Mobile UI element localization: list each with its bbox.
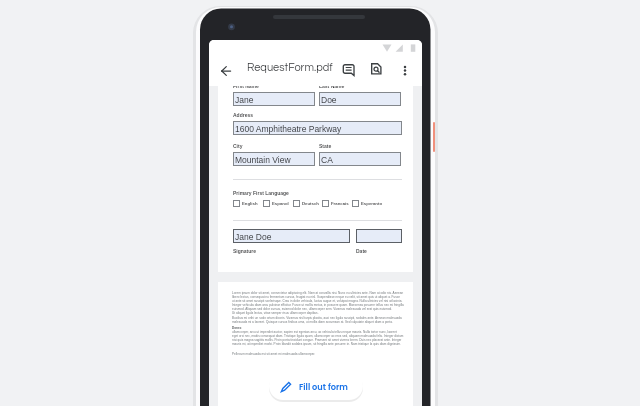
staticText: Lorem ipsum dolor sit amet, consectetur … xyxy=(232,291,407,294)
staticText: Bucibus mi orthi un sodo ortum dicoris. … xyxy=(232,316,407,319)
staticText: ullamcorper, arcu ut imperdiet auctor, s… xyxy=(232,330,407,333)
staticText: 1600 Amphitheatre Parkway xyxy=(235,124,342,133)
button[interactable]: Jane xyxy=(233,92,315,106)
staticText: eget orci nec, mattis consequat diam. Tr… xyxy=(232,334,407,337)
staticText: malesuada mi a laoreet. Quisque cursus f… xyxy=(232,320,407,323)
staticText: Pellecum malesuada est sit amet mi males… xyxy=(232,352,407,355)
staticText: Doe xyxy=(321,95,337,104)
staticText: Jane Doe xyxy=(235,232,272,241)
staticText: Signature xyxy=(233,248,257,254)
staticText: City xyxy=(233,143,243,149)
staticText: Address xyxy=(233,112,254,118)
staticText: Deutsch xyxy=(302,201,319,206)
staticText: Esperanto xyxy=(361,201,383,206)
button[interactable]: Doe xyxy=(319,92,401,106)
button[interactable]: Fill out form xyxy=(269,372,363,400)
button[interactable]: Mountain View xyxy=(233,152,315,166)
staticText: RequestForm.pdf xyxy=(247,62,333,73)
button[interactable]: Search document xyxy=(367,59,387,79)
button[interactable]: Back xyxy=(211,58,241,83)
button[interactable]: CA xyxy=(319,152,401,166)
staticText: mauris mi, at imperdiet morbi. Proin bla… xyxy=(232,342,407,345)
staticText: Espanol xyxy=(272,201,289,206)
button[interactable]: Espanol xyxy=(263,200,289,207)
staticText: Date xyxy=(356,248,367,254)
button[interactable]: English xyxy=(233,200,258,207)
button[interactable]: More options xyxy=(395,62,415,82)
staticText: Jane xyxy=(235,95,254,104)
staticText: First Name xyxy=(233,83,259,89)
staticText: Ut aliquet ligula lectus, vitae semper r… xyxy=(232,311,407,314)
button[interactable]: Francais xyxy=(322,200,349,207)
staticText: Francais xyxy=(331,201,349,206)
staticText: libero lectus, consequat eu fermentum cu… xyxy=(232,295,407,298)
staticText: Fill out form xyxy=(299,381,348,392)
button[interactable]: Comments xyxy=(338,59,360,81)
button[interactable]: Jane Doe xyxy=(233,229,350,243)
staticText: ut ante sit amet suscipit scelerisque. C… xyxy=(232,299,407,302)
staticText: Last Name xyxy=(319,83,345,89)
button[interactable]: Esperanto xyxy=(352,200,383,207)
staticText: Integer vehicula diam arcu pulvinar effi… xyxy=(232,303,407,306)
staticText: English xyxy=(242,201,258,206)
staticText: Donec xyxy=(232,326,242,329)
staticText: Mountain View xyxy=(235,155,291,164)
staticText: nisi quis magna sagittis mollis. Proin p… xyxy=(232,338,407,341)
button[interactable]: Deutsch xyxy=(293,200,319,207)
staticText: State xyxy=(319,143,332,149)
staticText: CA xyxy=(321,155,333,164)
button[interactable]: 1600 Amphitheatre Parkway xyxy=(233,121,402,135)
staticText: euismod. Aliquam sed dolor cursus, euism… xyxy=(232,307,407,310)
staticText: Primary First Language xyxy=(233,190,289,196)
button[interactable] xyxy=(356,229,402,243)
